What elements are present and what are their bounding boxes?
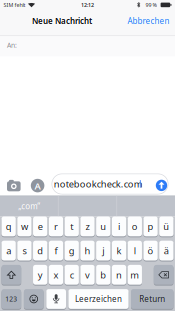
button[interactable]: y: [33, 265, 47, 286]
staticText: m: [130, 269, 139, 281]
button[interactable]: r: [49, 216, 63, 237]
button[interactable]: i: [112, 216, 126, 237]
staticText: q: [6, 220, 12, 233]
staticText: l: [134, 244, 136, 257]
staticText: o: [132, 220, 138, 233]
button[interactable]: a: [1, 241, 16, 261]
button[interactable]: n: [112, 265, 126, 286]
button[interactable]: Senden: [156, 180, 167, 191]
button[interactable]: z: [80, 216, 95, 237]
staticText: 12:12: [81, 1, 94, 8]
staticText: k: [116, 244, 121, 257]
staticText: Abbrechen: [127, 16, 169, 26]
staticText: notebookcheck.com: [54, 178, 143, 190]
staticText: r: [54, 220, 58, 233]
staticText: Leerzeichen: [75, 294, 122, 304]
button[interactable]: Return: [131, 289, 173, 310]
button[interactable]: t: [65, 216, 79, 237]
staticText: a: [6, 244, 11, 257]
button[interactable]: Apps: [31, 179, 45, 193]
staticText: y: [38, 269, 43, 281]
button[interactable]: Leerzeichen: [68, 289, 129, 310]
staticText: j: [102, 244, 104, 257]
staticText: f: [54, 244, 57, 257]
button[interactable]: Löschen: [154, 265, 173, 286]
staticText: b: [100, 269, 106, 281]
staticText: An:: [7, 41, 17, 50]
button[interactable]: Abbrechen: [126, 13, 170, 29]
button[interactable]: w: [17, 216, 32, 237]
button[interactable]: Nachricht: [51, 173, 168, 194]
button[interactable]: o: [128, 216, 142, 237]
staticText: ö: [148, 244, 154, 257]
staticText: Return: [139, 294, 165, 304]
button[interactable]: h: [80, 241, 95, 261]
staticText: c: [70, 269, 74, 281]
staticText: Neue Nachricht: [32, 16, 92, 26]
button[interactable]: 123: [1, 289, 21, 310]
button[interactable]: „com“: [1, 196, 58, 216]
staticText: SIM fehlt: [3, 1, 25, 8]
button[interactable]: k: [112, 241, 126, 261]
button[interactable]: v: [80, 265, 95, 286]
button[interactable]: u: [96, 216, 110, 237]
button[interactable]: g: [65, 241, 79, 261]
staticText: w: [21, 220, 28, 233]
staticText: A: [35, 180, 41, 192]
button[interactable]: q: [1, 216, 16, 237]
button[interactable]: p: [143, 216, 158, 237]
button[interactable]: m: [128, 265, 142, 286]
staticText: t: [70, 220, 73, 233]
button[interactable]: d: [33, 241, 47, 261]
button[interactable]: Kamera: [6, 178, 21, 192]
button[interactable]: x: [49, 265, 63, 286]
button[interactable]: l: [128, 241, 142, 261]
button[interactable]: c: [65, 265, 79, 286]
staticText: s: [22, 244, 26, 257]
staticText: d: [37, 244, 43, 257]
button[interactable]: b: [96, 265, 110, 286]
button[interactable]: An: Empfänger: [0, 36, 175, 56]
staticText: 99 %: [145, 1, 156, 8]
button[interactable]: ü: [159, 216, 173, 237]
staticText: e: [38, 220, 43, 233]
button[interactable]: j: [96, 241, 110, 261]
staticText: x: [53, 269, 58, 281]
staticText: ü: [163, 220, 169, 233]
button[interactable]: ä: [159, 241, 173, 261]
staticText: g: [69, 244, 75, 257]
staticText: ä: [164, 244, 169, 257]
staticText: i: [118, 220, 120, 233]
staticText: 123: [5, 295, 17, 303]
staticText: n: [116, 269, 122, 281]
button[interactable]: f: [49, 241, 63, 261]
button[interactable]: Diktieren: [46, 289, 66, 310]
staticText: h: [84, 244, 90, 257]
staticText: „com“: [18, 201, 40, 211]
staticText: p: [148, 220, 154, 233]
button[interactable]: e: [33, 216, 47, 237]
staticText: u: [100, 220, 106, 233]
button[interactable]: ö: [143, 241, 158, 261]
button[interactable]: Umschalt: [1, 265, 21, 286]
staticText: v: [85, 269, 90, 281]
staticText: z: [85, 220, 89, 233]
button[interactable]: s: [17, 241, 32, 261]
button[interactable]: Emoji: [24, 289, 44, 310]
